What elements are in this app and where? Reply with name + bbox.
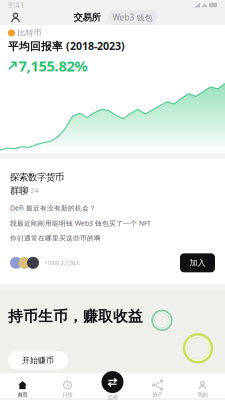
staticText: DeFi 最近有没有新的机会？ <box>10 203 96 212</box>
staticText: 交易所 <box>73 12 100 23</box>
staticText: 探索数字货币 <box>10 171 64 183</box>
button[interactable]: Web3 钱包 <box>107 10 157 25</box>
staticText: 平均回报率 (2018-2023) <box>8 39 125 53</box>
staticText: +1000 人已加入 <box>44 259 80 266</box>
staticText: 加入 <box>189 258 205 268</box>
button[interactable]: 首页 <box>0 378 45 398</box>
staticText: 首页 <box>17 392 27 398</box>
button[interactable]: 交易 <box>90 375 135 400</box>
staticText: 我最近刚刚用聪明钱 Web3 钱包买了一个 NFT <box>10 219 151 228</box>
button[interactable]: 行情 <box>45 378 90 398</box>
staticText: 7,155.82% <box>18 56 87 75</box>
staticText: 行情 <box>62 392 72 398</box>
staticText: 我的 <box>197 392 207 398</box>
staticText: 交易 <box>107 394 117 400</box>
staticText: Web3 钱包 <box>112 12 152 23</box>
staticText: 9:41 <box>8 0 25 10</box>
button[interactable]: 资产 <box>135 378 180 398</box>
button[interactable]: 交易所 <box>71 10 102 25</box>
staticText: 开始赚币 <box>22 355 54 365</box>
staticText: 群聊 <box>10 185 28 196</box>
staticText: 资产 <box>152 392 162 398</box>
button[interactable]: 开始赚币 <box>8 351 68 369</box>
staticText: 你们通常在哪里买这些币的啊 <box>10 234 101 242</box>
button[interactable]: 我的 <box>180 378 225 398</box>
button[interactable]: 加入 <box>180 253 215 272</box>
staticText: 比特币 <box>17 28 41 38</box>
staticText: 24 <box>30 186 38 195</box>
staticText: 持币生币，赚取收益 <box>8 307 143 325</box>
button[interactable]: Profile <box>7 10 24 25</box>
